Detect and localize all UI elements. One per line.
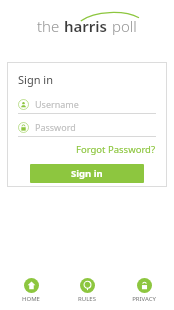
button[interactable]: HOME: [5, 276, 57, 303]
staticText: poll: [108, 16, 137, 36]
button[interactable]: PRIVACY: [118, 276, 170, 303]
staticText: Password: [35, 121, 76, 133]
button[interactable]: RULES: [61, 276, 113, 303]
staticText: Forgot Password?: [76, 143, 156, 156]
button[interactable]: Forgot Password?: [18, 143, 156, 156]
staticText: Sign in: [18, 72, 53, 87]
staticText: Username: [35, 98, 79, 110]
staticText: harris: [64, 16, 108, 36]
staticText: the: [37, 16, 64, 36]
button[interactable]: Sign in: [30, 164, 144, 183]
staticText: Sign in: [71, 167, 103, 180]
staticText: RULES: [78, 295, 96, 303]
staticText: PRIVACY: [132, 295, 156, 303]
staticText: HOME: [22, 295, 40, 303]
